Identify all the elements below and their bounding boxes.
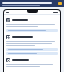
button[interactable] bbox=[6, 17, 58, 34]
button[interactable] bbox=[6, 57, 58, 70]
button[interactable]: Open offer bbox=[58, 2, 62, 5]
button[interactable] bbox=[6, 52, 58, 55]
button[interactable] bbox=[6, 29, 58, 32]
button[interactable] bbox=[6, 34, 58, 57]
button[interactable] bbox=[6, 48, 58, 51]
button[interactable]: Open offer bbox=[0, 0, 64, 7]
